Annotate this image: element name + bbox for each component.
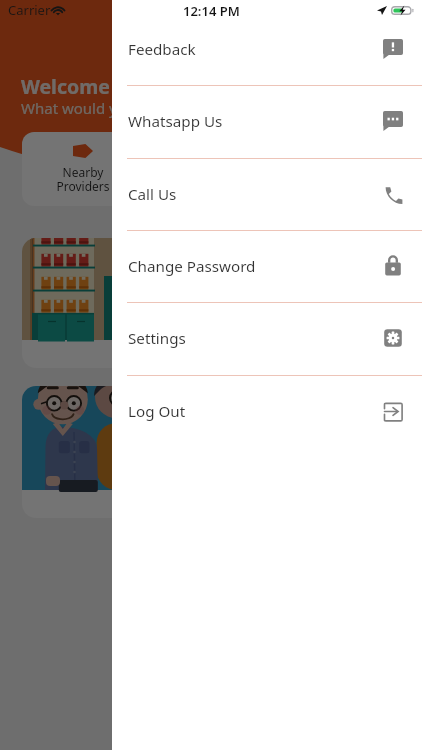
button[interactable]: My Orders xyxy=(150,132,272,206)
staticText: Settings xyxy=(128,328,186,349)
staticText: Call Us xyxy=(128,184,177,205)
button[interactable]: My Profile xyxy=(278,132,400,206)
button[interactable]: Nearby Providers xyxy=(22,132,144,206)
button[interactable]: Change Password xyxy=(112,230,422,302)
button[interactable] xyxy=(22,386,400,518)
button[interactable]: Call Us xyxy=(112,158,422,230)
staticText: Feedback xyxy=(128,39,196,60)
staticText: Nearby Providers xyxy=(56,164,110,195)
button[interactable]: Feedback xyxy=(112,13,422,85)
staticText: Log Out xyxy=(128,401,186,422)
staticText: Welcome Harry xyxy=(21,73,171,100)
staticText: What would you like to do? xyxy=(21,98,211,118)
staticText: Whatsapp Us xyxy=(128,111,223,132)
staticText: Carrier xyxy=(8,1,51,19)
staticText: Change Password xyxy=(128,256,256,277)
staticText: 12:14 PM xyxy=(183,2,240,20)
button[interactable]: Whatsapp Us xyxy=(112,85,422,157)
button[interactable] xyxy=(22,238,400,368)
button[interactable]: Settings xyxy=(112,302,422,374)
button[interactable]: Log Out xyxy=(112,375,422,447)
